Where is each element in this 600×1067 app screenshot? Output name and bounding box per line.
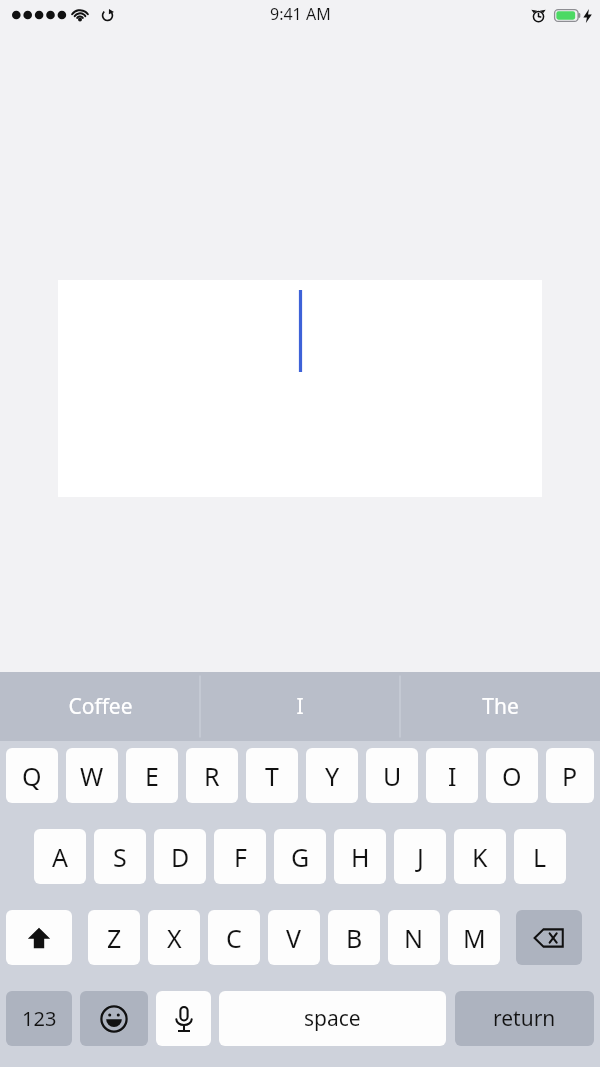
button[interactable]: Shift: [6, 910, 72, 965]
staticText: P: [562, 759, 578, 793]
button[interactable]: V: [268, 910, 320, 965]
staticText: Q: [22, 759, 42, 793]
button[interactable]: W: [66, 748, 118, 803]
staticText: Coffee: [68, 692, 133, 721]
button[interactable]: H: [334, 829, 386, 884]
staticText: S: [113, 840, 127, 874]
button[interactable]: T: [246, 748, 298, 803]
staticText: space: [304, 1004, 361, 1033]
button[interactable]: P: [546, 748, 594, 803]
button[interactable]: M: [448, 910, 500, 965]
staticText: U: [383, 759, 402, 793]
button[interactable]: I: [426, 748, 478, 803]
staticText: E: [145, 759, 159, 793]
button[interactable]: O: [486, 748, 538, 803]
staticText: V: [286, 921, 302, 955]
staticText: Y: [325, 759, 340, 793]
staticText: X: [167, 921, 182, 955]
staticText: O: [502, 759, 522, 793]
button[interactable]: I: [200, 672, 400, 741]
staticText: A: [52, 840, 68, 874]
button[interactable]: G: [274, 829, 326, 884]
staticText: I: [448, 759, 457, 793]
staticText: 123: [22, 1005, 57, 1032]
staticText: M: [463, 921, 486, 955]
button[interactable]: X: [148, 910, 200, 965]
staticText: R: [204, 759, 220, 793]
button[interactable]: F: [214, 829, 266, 884]
button[interactable]: [58, 280, 542, 497]
button[interactable]: 123: [6, 991, 72, 1046]
button[interactable]: The: [400, 672, 600, 741]
staticText: J: [417, 840, 424, 874]
button[interactable]: B: [328, 910, 380, 965]
button[interactable]: space: [219, 991, 446, 1046]
staticText: G: [291, 840, 310, 874]
button[interactable]: return: [455, 991, 594, 1046]
staticText: T: [265, 759, 279, 793]
button[interactable]: Emoji: [80, 991, 148, 1046]
button[interactable]: L: [514, 829, 566, 884]
staticText: L: [533, 840, 547, 874]
staticText: N: [404, 921, 424, 955]
staticText: K: [472, 840, 488, 874]
staticText: Z: [107, 921, 122, 955]
staticText: 9:41 AM: [270, 3, 331, 25]
button[interactable]: K: [454, 829, 506, 884]
button[interactable]: Z: [88, 910, 140, 965]
staticText: W: [80, 759, 104, 793]
button[interactable]: A: [34, 829, 86, 884]
button[interactable]: Q: [6, 748, 58, 803]
button[interactable]: J: [394, 829, 446, 884]
button[interactable]: Coffee: [0, 672, 200, 741]
staticText: B: [346, 921, 363, 955]
button[interactable]: Dictate: [156, 991, 211, 1046]
staticText: D: [171, 840, 190, 874]
staticText: The: [482, 692, 519, 721]
button[interactable]: U: [366, 748, 418, 803]
button[interactable]: C: [208, 910, 260, 965]
button[interactable]: R: [186, 748, 238, 803]
button[interactable]: S: [94, 829, 146, 884]
staticText: return: [493, 1004, 556, 1033]
staticText: C: [226, 921, 242, 955]
button[interactable]: D: [154, 829, 206, 884]
staticText: H: [351, 840, 370, 874]
button[interactable]: Backspace: [516, 910, 582, 965]
staticText: I: [296, 692, 304, 721]
staticText: F: [234, 840, 247, 874]
button[interactable]: E: [126, 748, 178, 803]
button[interactable]: N: [388, 910, 440, 965]
button[interactable]: Y: [306, 748, 358, 803]
